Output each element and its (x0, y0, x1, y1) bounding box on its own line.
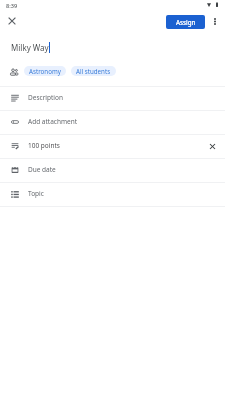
button[interactable]: 100 points (0, 134, 225, 158)
staticText: All students (76, 67, 111, 75)
staticText: Description (28, 93, 63, 102)
staticText: 8:39 (6, 2, 18, 10)
button[interactable]: Clear points (205, 139, 219, 153)
button[interactable]: Topic (0, 182, 225, 206)
staticText: Astronomy (29, 67, 61, 75)
button[interactable]: Add attachment (0, 110, 225, 134)
button[interactable]: More options (206, 12, 224, 30)
button[interactable]: Due date (0, 158, 225, 182)
staticText: Topic (28, 189, 44, 198)
button[interactable]: All students (71, 66, 116, 76)
staticText: Assign (176, 18, 196, 26)
staticText: 100 points (28, 141, 60, 150)
button[interactable]: Close (1, 10, 23, 32)
staticText: Milky Way (11, 42, 49, 53)
button[interactable]: Assign (166, 15, 205, 29)
button[interactable]: Astronomy (24, 66, 66, 76)
button[interactable]: Description (0, 86, 225, 110)
staticText: Add attachment (28, 117, 78, 126)
staticText: Due date (28, 165, 56, 174)
